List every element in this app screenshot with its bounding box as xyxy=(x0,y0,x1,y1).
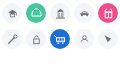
button[interactable]: Bank xyxy=(50,3,70,23)
button[interactable]: Weather xyxy=(26,3,46,23)
button[interactable]: Edit xyxy=(2,29,22,49)
button[interactable]: Profile xyxy=(74,29,94,49)
button[interactable]: Gift xyxy=(98,3,118,23)
button[interactable]: Car xyxy=(74,3,94,23)
button[interactable]: Cart xyxy=(50,29,70,49)
button[interactable]: Education xyxy=(2,3,22,23)
button[interactable]: Send xyxy=(98,29,118,49)
button[interactable]: Lock xyxy=(26,29,46,49)
